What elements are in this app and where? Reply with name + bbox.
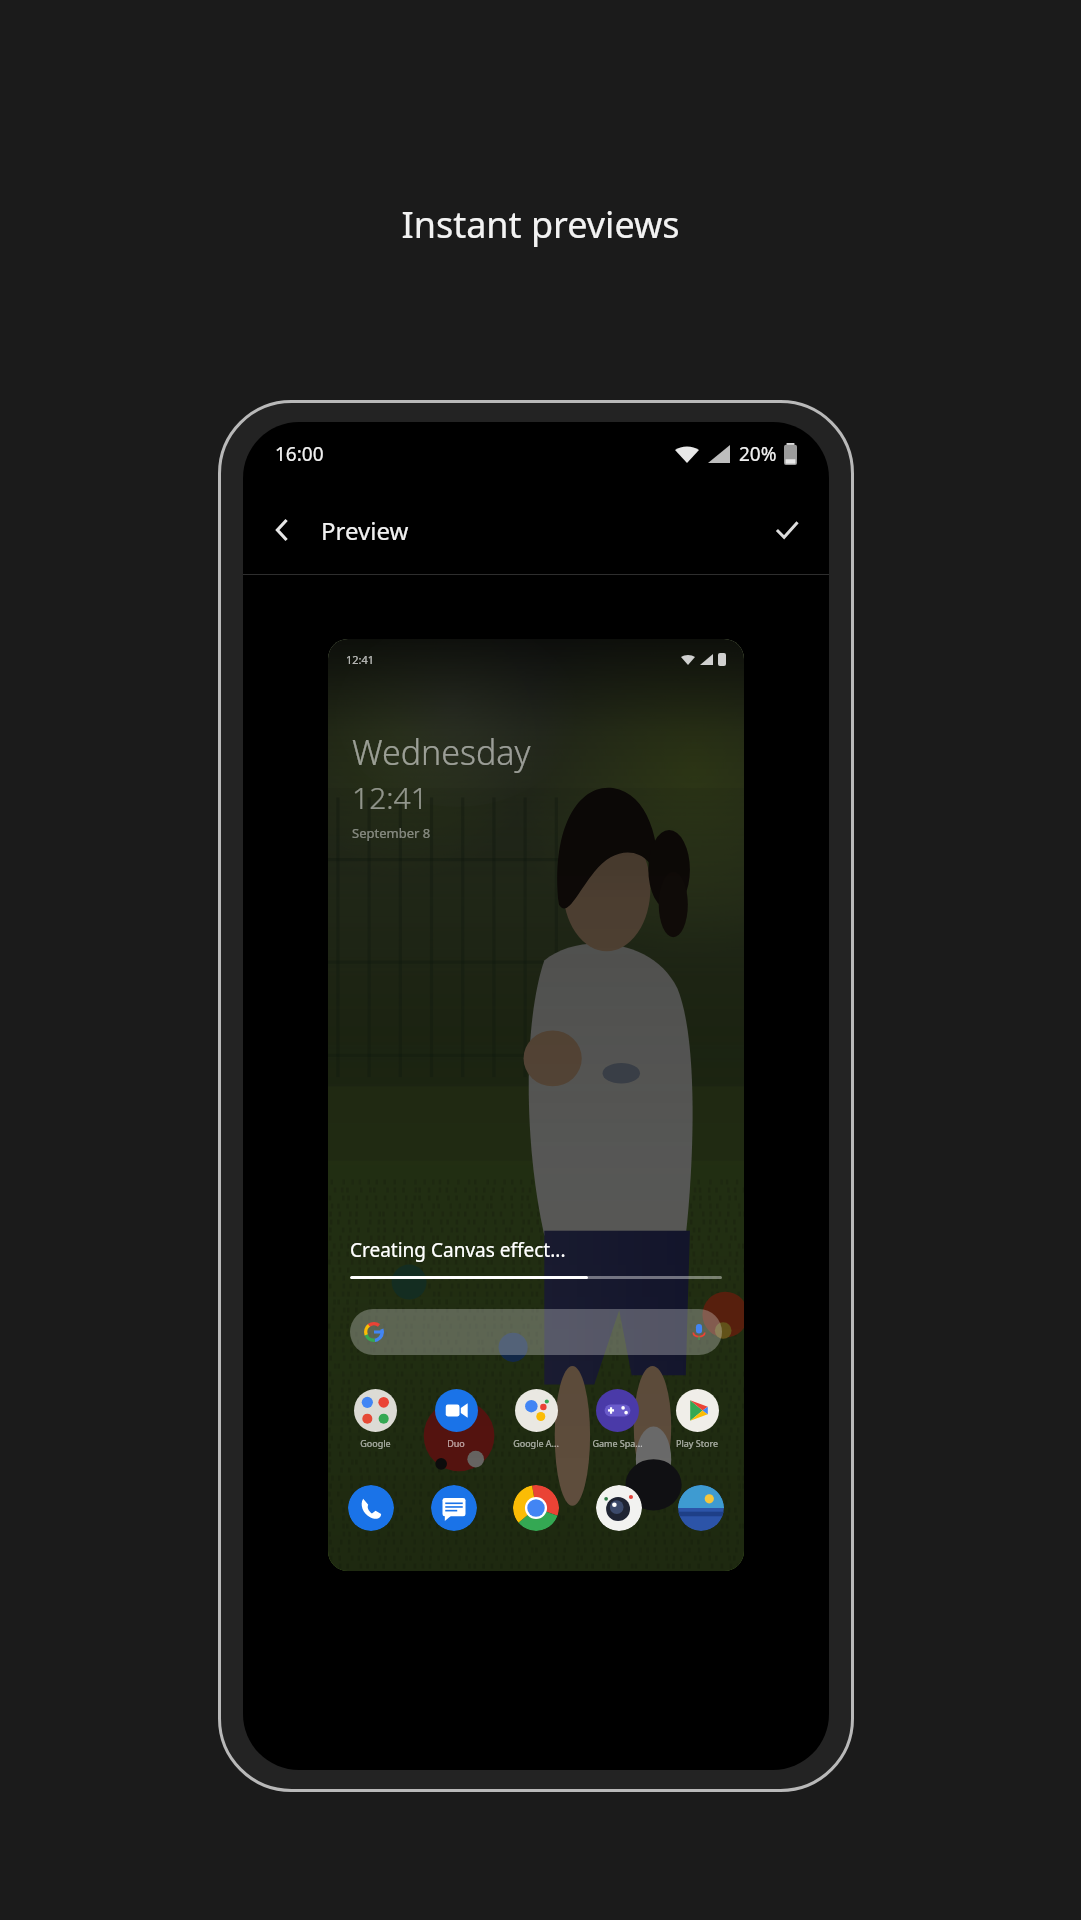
button[interactable]: Game Spa... bbox=[586, 1389, 648, 1449]
staticText: 20% bbox=[739, 441, 777, 467]
button[interactable]: Camera bbox=[596, 1485, 642, 1531]
staticText: 16:00 bbox=[275, 441, 324, 467]
button[interactable]: Duo bbox=[425, 1389, 487, 1449]
staticText: Play Store bbox=[676, 1437, 718, 1449]
staticText: Preview bbox=[321, 514, 409, 547]
staticText: Google A... bbox=[513, 1437, 559, 1449]
button[interactable]: Search bbox=[350, 1309, 722, 1355]
button[interactable]: Messages bbox=[431, 1485, 477, 1531]
staticText: Duo bbox=[447, 1437, 465, 1449]
staticText: September 8 bbox=[352, 824, 431, 842]
staticText: Instant previews bbox=[401, 200, 680, 249]
button[interactable]: Photos bbox=[678, 1485, 724, 1531]
button[interactable]: Google bbox=[344, 1389, 406, 1449]
button[interactable]: Back bbox=[255, 502, 311, 558]
staticText: Game Spa... bbox=[592, 1437, 643, 1449]
staticText: Wednesday bbox=[352, 729, 531, 775]
staticText: Google bbox=[360, 1437, 391, 1449]
staticText: Creating Canvas effect... bbox=[350, 1237, 566, 1263]
button[interactable]: Chrome bbox=[513, 1485, 559, 1531]
button[interactable]: Google A... bbox=[505, 1389, 567, 1449]
button[interactable]: Phone bbox=[348, 1485, 394, 1531]
button[interactable]: 12:41 bbox=[328, 639, 744, 1571]
button[interactable]: Play Store bbox=[666, 1389, 728, 1449]
staticText: 12:41 bbox=[352, 777, 428, 818]
staticText: 12:41 bbox=[346, 652, 375, 667]
button[interactable]: Confirm bbox=[759, 502, 815, 558]
